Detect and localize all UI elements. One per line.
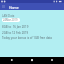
- staticText: Home: [9, 5, 19, 10]
- button[interactable]: 24Mar 2019: [2, 18, 20, 22]
- staticText: LAN Data: [2, 14, 15, 18]
- staticText: 24Mar 2019: [3, 18, 18, 22]
- staticText: 8GB to 16 Jan 2019: [2, 25, 29, 29]
- staticText: Today your bonus is of 1GB free data: [2, 36, 52, 40]
- staticText: 2GB to 12 Feb 2019: [2, 31, 29, 35]
- button[interactable]: Menu: [1, 4, 6, 9]
